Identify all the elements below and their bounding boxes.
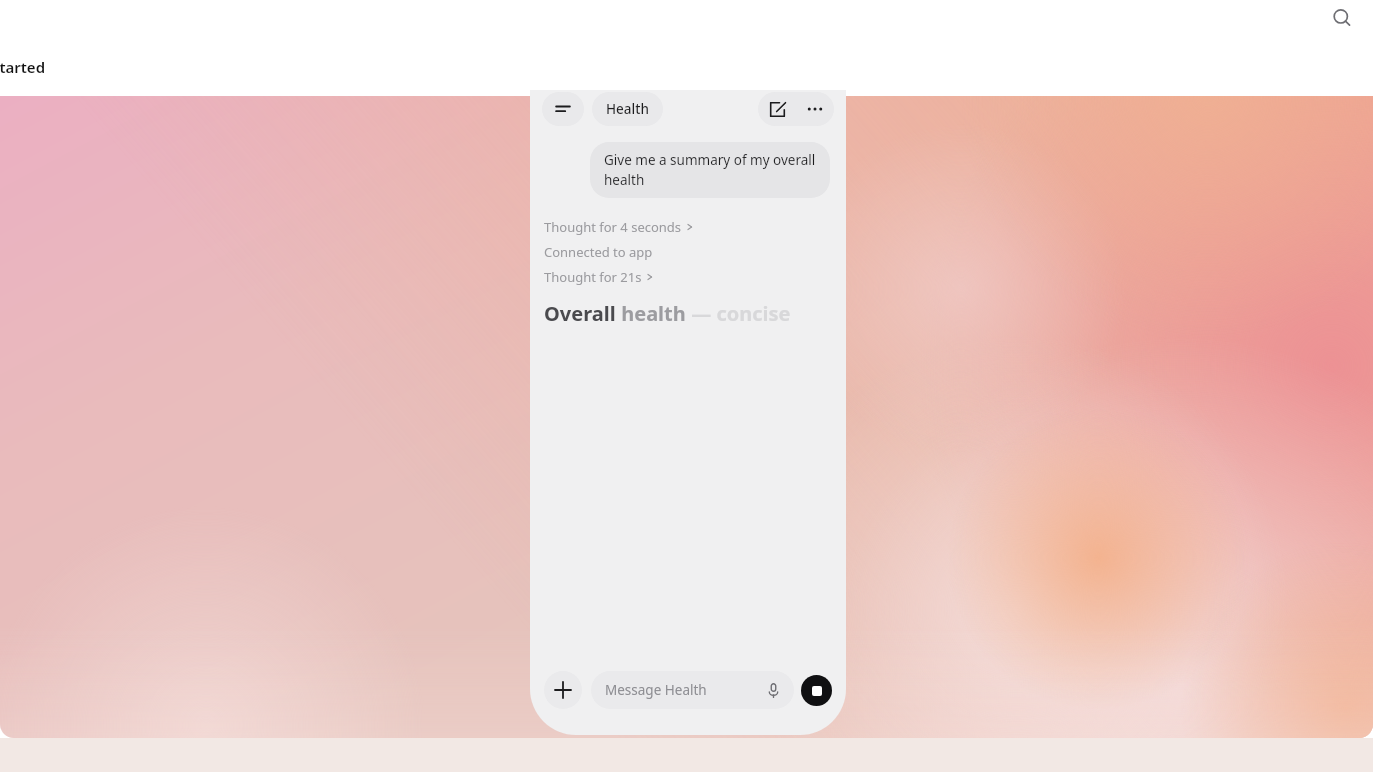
staticText: Give me a summary of my overall health [604, 151, 816, 189]
button[interactable]: New chat [758, 92, 796, 126]
button[interactable]: Menu [542, 92, 584, 126]
staticText: health [616, 300, 686, 327]
staticText: started [0, 57, 46, 77]
button[interactable]: Thought for 21s [544, 268, 654, 286]
staticText: Health [606, 100, 649, 118]
button[interactable]: Message Health [591, 671, 794, 709]
staticText: Thought for 4 seconds [544, 218, 682, 236]
button[interactable]: Give me a summary of my overall health [590, 142, 830, 198]
button[interactable]: Connected to app [544, 243, 653, 261]
button[interactable]: Health [592, 92, 663, 126]
button[interactable]: Search [1326, 2, 1358, 34]
staticText: Overall [544, 300, 616, 327]
button[interactable]: Stop generating [801, 675, 832, 706]
button[interactable]: More options [796, 92, 834, 126]
staticText: Thought for 21s [544, 268, 642, 286]
staticText: Message Health [605, 681, 760, 699]
button[interactable]: Add attachment [544, 671, 582, 709]
button[interactable]: Thought for 4 seconds [544, 218, 694, 236]
button[interactable]: Voice input [760, 677, 786, 703]
staticText: Connected to app [544, 243, 653, 261]
staticText: — concise [686, 300, 791, 327]
